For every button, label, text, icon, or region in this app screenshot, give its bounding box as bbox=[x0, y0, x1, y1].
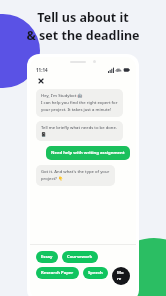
staticText: I can help you find the right expert for bbox=[41, 100, 118, 106]
staticText: Hey, I'm Studybot 🤖 bbox=[41, 93, 83, 99]
button[interactable]: Coursework bbox=[62, 251, 98, 263]
staticText: Speech bbox=[88, 270, 103, 276]
staticText: Essay bbox=[41, 254, 53, 260]
staticText: 📓 bbox=[41, 132, 47, 137]
button[interactable]: Close bbox=[36, 76, 46, 86]
staticText: Research Paper bbox=[41, 270, 74, 276]
staticText: Coursework bbox=[67, 254, 93, 260]
button[interactable]: Need help with writing assignment bbox=[46, 146, 130, 160]
staticText: Tell me briefly what needs to be done. bbox=[41, 125, 118, 131]
button[interactable]: Speech bbox=[83, 267, 108, 279]
button[interactable]: More bbox=[112, 267, 130, 285]
staticText: Got it. And what's the type of your bbox=[41, 169, 110, 175]
staticText: project? 👇 bbox=[41, 176, 64, 182]
button[interactable]: Research Paper bbox=[36, 267, 79, 279]
staticText: & set the deadline bbox=[26, 27, 140, 44]
staticText: Tell us about it bbox=[37, 9, 129, 26]
staticText: More bbox=[117, 270, 125, 282]
button[interactable]: Essay bbox=[36, 251, 58, 263]
staticText: Need help with writing assignment bbox=[51, 150, 125, 156]
staticText: your project. It takes just a minute! bbox=[41, 107, 112, 113]
staticText: 11:14 bbox=[36, 67, 48, 73]
